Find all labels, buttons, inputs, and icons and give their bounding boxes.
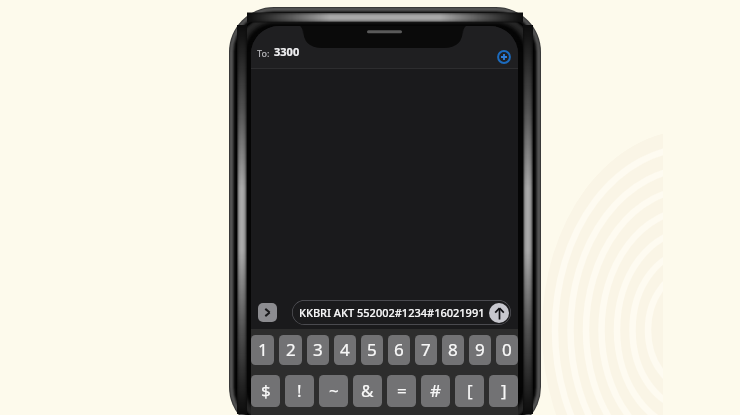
staticText: 3300	[274, 44, 300, 59]
staticText: 7	[421, 338, 431, 361]
button[interactable]: 0	[496, 335, 518, 365]
staticText: #	[430, 379, 441, 402]
button[interactable]: More options	[258, 303, 277, 322]
button[interactable]: $	[251, 375, 280, 407]
button[interactable]: KKBRI AKT 552002#1234#16021991	[292, 300, 511, 325]
staticText: [	[467, 379, 473, 402]
staticText: $	[261, 379, 271, 402]
button[interactable]: 2	[279, 335, 302, 365]
staticText: 1	[258, 338, 268, 361]
button[interactable]: =	[387, 375, 416, 407]
button[interactable]: 3	[307, 335, 329, 365]
button[interactable]: 8	[442, 335, 464, 365]
button[interactable]: [	[455, 375, 484, 407]
button[interactable]: ]	[489, 375, 518, 407]
button[interactable]: 7	[415, 335, 437, 365]
staticText: KKBRI AKT 552002#1234#16021991	[299, 305, 485, 320]
staticText: To:	[257, 47, 270, 59]
staticText: ~	[329, 379, 339, 402]
staticText: ]	[501, 379, 507, 402]
button[interactable]: !	[285, 375, 314, 407]
button[interactable]: &	[353, 375, 382, 407]
staticText: =	[397, 379, 407, 402]
staticText: 2	[286, 338, 296, 361]
button[interactable]: 4	[334, 335, 356, 365]
button[interactable]: 5	[361, 335, 383, 365]
button[interactable]: #	[421, 375, 450, 407]
staticText: 8	[448, 338, 458, 361]
button[interactable]: 1	[251, 335, 274, 365]
button[interactable]: Add contact	[497, 50, 511, 64]
staticText: 6	[394, 338, 404, 361]
staticText: 4	[340, 338, 350, 361]
staticText: !	[297, 379, 302, 402]
staticText: &	[361, 379, 374, 402]
staticText: 5	[367, 338, 377, 361]
staticText: 3	[313, 338, 323, 361]
staticText: 9	[475, 338, 485, 361]
button[interactable]: ~	[319, 375, 348, 407]
staticText: 0	[502, 338, 512, 361]
button[interactable]: 6	[388, 335, 410, 365]
button[interactable]: Send	[489, 303, 509, 323]
button[interactable]: 9	[469, 335, 491, 365]
